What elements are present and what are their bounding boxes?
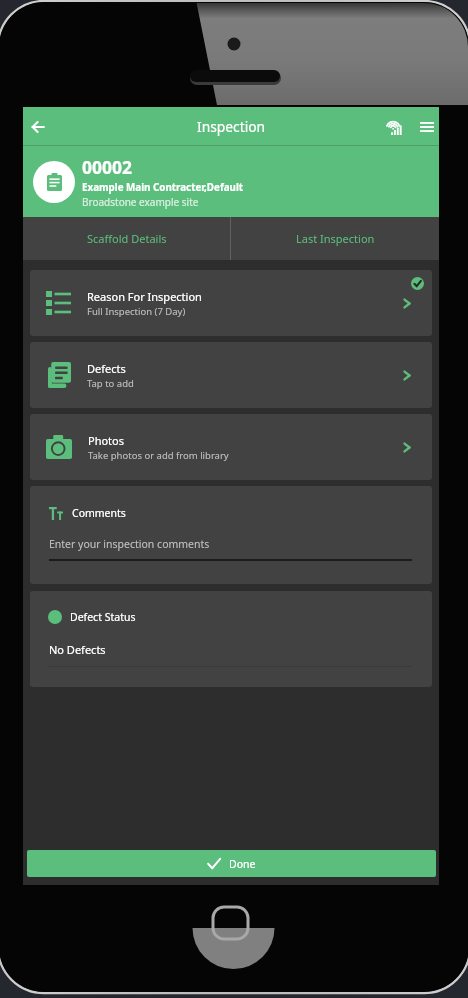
- button[interactable]: Defect Status: [30, 591, 432, 687]
- staticText: Take photos or add from library: [88, 449, 229, 462]
- staticText: Done: [229, 857, 256, 871]
- staticText: Defect Status: [70, 610, 136, 624]
- button[interactable]: Menu: [412, 112, 442, 142]
- button[interactable]: Done: [27, 850, 436, 877]
- staticText: Enter your inspection comments: [49, 537, 210, 551]
- button[interactable]: Defects: [30, 342, 432, 408]
- staticText: Inspection: [197, 117, 266, 136]
- staticText: Scaffold Details: [87, 231, 167, 246]
- staticText: Last Inspection: [296, 231, 375, 246]
- button[interactable]: Comments: [30, 486, 432, 584]
- staticText: Broadstone example site: [82, 195, 199, 209]
- staticText: Example Main Contracter,Default: [82, 181, 244, 194]
- staticText: Reason For Inspection: [87, 289, 202, 304]
- button[interactable]: Scaffold Details: [23, 217, 230, 260]
- staticText: Full Inspection (7 Day): [87, 305, 186, 318]
- staticText: Defects: [87, 361, 126, 376]
- button[interactable]: Network status: [379, 112, 409, 142]
- button[interactable]: Last Inspection: [231, 217, 439, 260]
- staticText: No Defects: [49, 642, 106, 657]
- staticText: Photos: [88, 433, 125, 448]
- button[interactable]: Reason For Inspection: [30, 270, 432, 336]
- staticText: Comments: [72, 506, 126, 520]
- button[interactable]: Photos: [30, 414, 432, 480]
- button[interactable]: Back: [23, 112, 53, 142]
- staticText: Tap to add: [87, 377, 134, 390]
- staticText: 00002: [82, 155, 133, 179]
